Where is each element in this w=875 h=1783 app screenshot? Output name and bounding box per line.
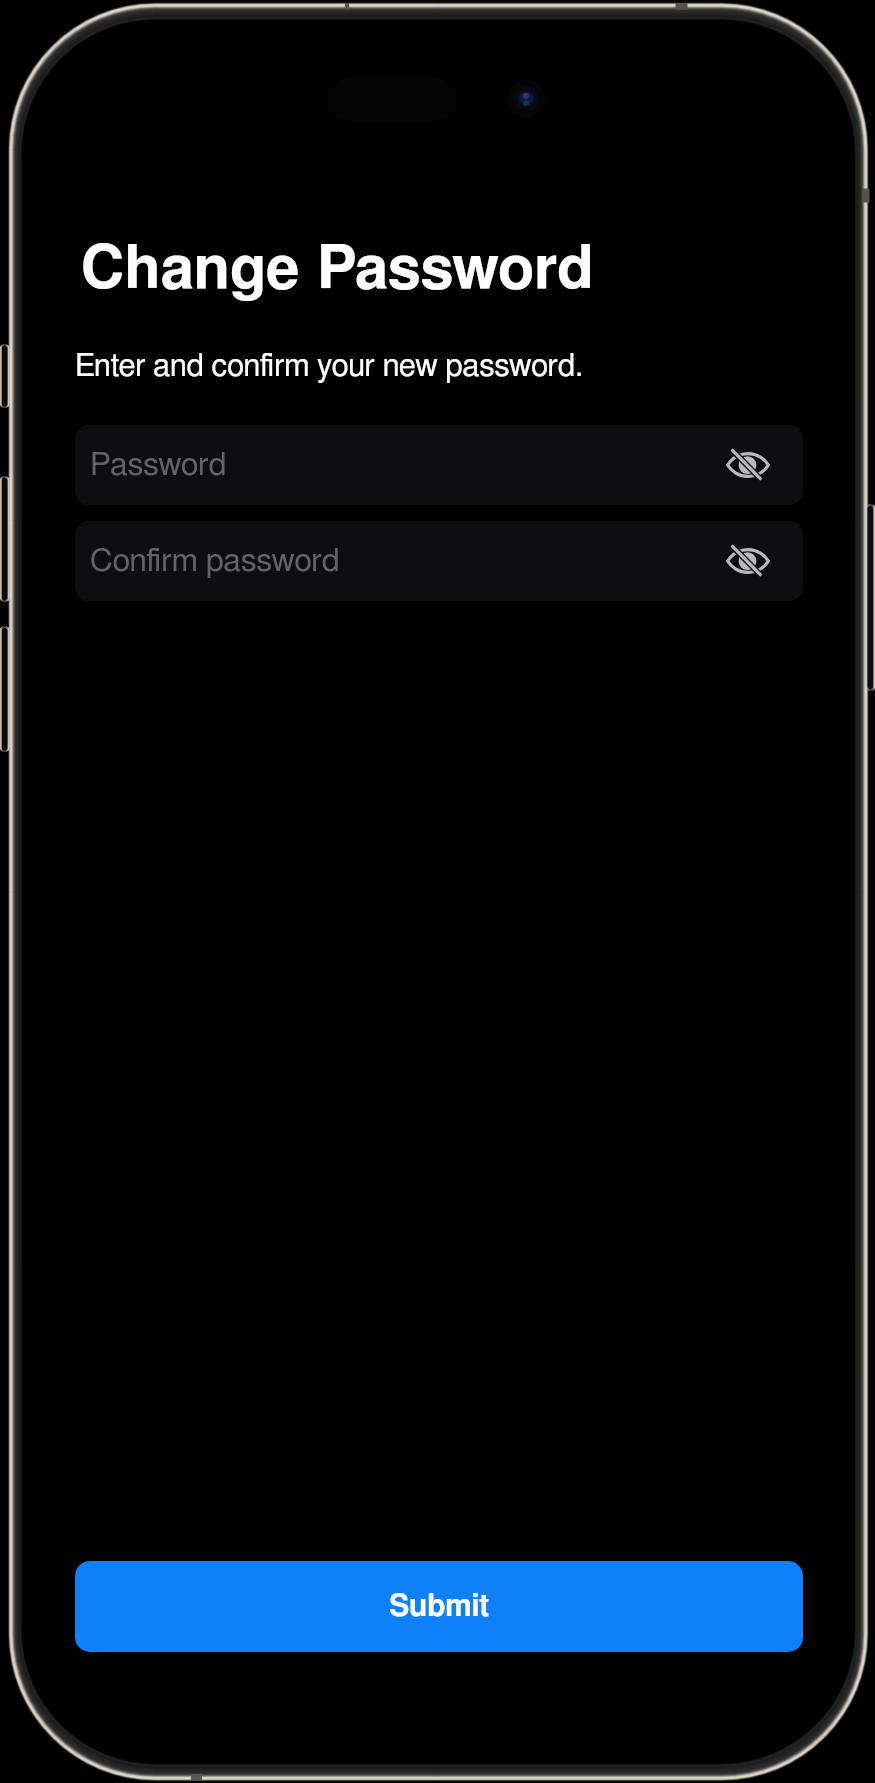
- staticText: Confirm password: [90, 545, 723, 577]
- staticText: Enter and confirm your new password.: [75, 351, 583, 382]
- button[interactable]: Submit: [75, 1561, 803, 1652]
- button[interactable]: Password: [75, 425, 803, 505]
- button[interactable]: Confirm password: [75, 521, 803, 601]
- staticText: Change Password: [81, 240, 594, 300]
- button[interactable]: Show password: [723, 440, 773, 490]
- button[interactable]: Show password: [723, 536, 773, 586]
- staticText: Password: [90, 449, 723, 481]
- staticText: Submit: [389, 1592, 490, 1622]
